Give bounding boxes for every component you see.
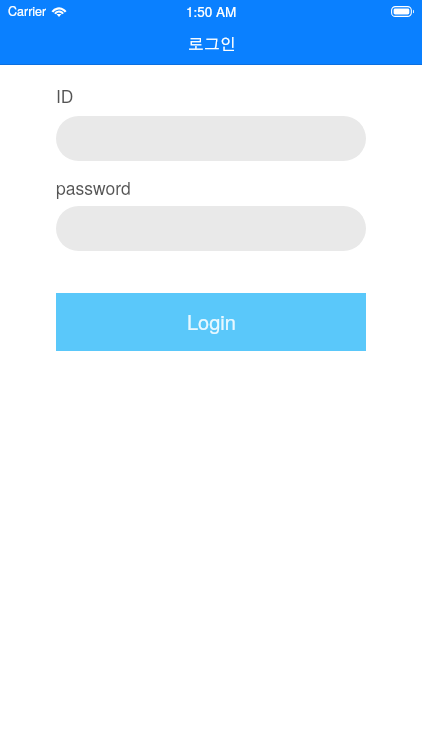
staticText: 1:50 AM bbox=[186, 2, 237, 21]
staticText: password bbox=[56, 175, 131, 200]
staticText: ID bbox=[56, 83, 74, 108]
staticText: Carrier bbox=[8, 2, 47, 20]
other: Wi-Fi signal bbox=[51, 5, 67, 18]
button[interactable]: ID input field bbox=[56, 116, 366, 161]
staticText: Login bbox=[187, 307, 236, 336]
other: Battery full bbox=[391, 6, 414, 17]
button[interactable]: password input field bbox=[56, 206, 366, 251]
staticText: 로그인 bbox=[188, 34, 236, 54]
button[interactable]: Login bbox=[56, 293, 366, 351]
